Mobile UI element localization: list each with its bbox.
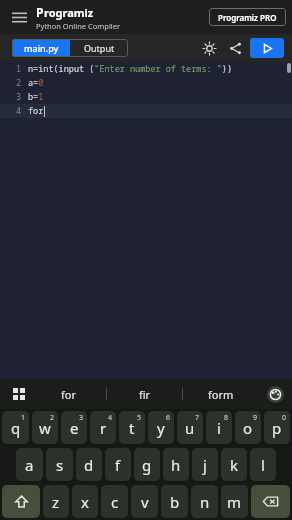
staticText: d [84,455,94,475]
staticText: Output [84,42,115,54]
staticText: p [272,418,282,438]
button[interactable]: Run [250,38,284,58]
staticText: k [230,455,239,475]
staticText: b [170,492,180,512]
staticText: u [185,418,195,438]
staticText: z [52,492,60,512]
staticText: 3 [79,413,84,423]
button[interactable]: w [32,411,58,444]
button[interactable]: h [163,448,189,481]
staticText: v [141,492,149,512]
button[interactable]: v [131,485,158,518]
staticText: 8 [224,413,229,423]
button[interactable]: n [191,485,218,518]
staticText: Python Online Compiler [36,21,121,31]
button[interactable]: form [183,379,258,409]
staticText: s [56,455,64,475]
button[interactable]: c [101,485,128,518]
staticText: 5 [137,413,142,423]
button[interactable]: Themes [264,383,286,405]
button[interactable]: t [119,411,145,444]
button[interactable]: i [206,411,232,444]
staticText: h [171,455,181,475]
button[interactable]: Programiz PRO [209,8,286,26]
staticText: m [227,492,242,512]
staticText: o [243,418,253,438]
button[interactable]: o [235,411,261,444]
button[interactable]: Keyboard options [8,383,30,405]
staticText: c [111,492,119,512]
staticText: rogramiz [44,5,94,20]
staticText: 4 [108,413,113,423]
staticText: 7 [195,413,200,423]
staticText: for [61,387,76,402]
button[interactable]: e [61,411,87,444]
button[interactable]: p [264,411,290,444]
staticText: 4 [16,105,22,117]
staticText: y [157,418,165,438]
button[interactable]: Menu [6,4,32,30]
staticText: 6 [166,413,171,423]
staticText: x [81,492,89,512]
button[interactable]: g [134,448,160,481]
staticText: l [261,455,265,475]
staticText: j [203,455,207,475]
staticText: fir [139,387,151,402]
button[interactable]: k [221,448,247,481]
staticText: i [217,418,221,438]
button[interactable]: fir [107,379,182,409]
button[interactable]: z [43,485,69,518]
staticText: 2 [16,77,22,89]
staticText: t [129,418,135,438]
staticText: w [39,418,51,438]
staticText: 1 [21,413,26,423]
button[interactable]: l [250,448,276,481]
button[interactable]: q [2,411,29,444]
button[interactable]: j [192,448,218,481]
button[interactable]: Backspace [251,485,290,518]
button[interactable]: b [161,485,188,518]
button[interactable]: Theme [198,37,220,59]
button[interactable]: for [30,379,106,409]
staticText: Programiz PRO [218,12,277,23]
staticText: q [11,418,21,438]
staticText: 3 [16,91,22,103]
button[interactable]: a [16,448,43,481]
staticText: n [200,492,210,512]
button[interactable]: Shift [2,485,40,518]
staticText: f [115,455,121,475]
button[interactable]: Output [70,39,128,57]
staticText: main.py [24,42,59,54]
staticText: 9 [253,413,258,423]
button[interactable]: y [148,411,174,444]
staticText: r [100,418,107,438]
staticText: b=1 [28,91,44,103]
button[interactable]: x [72,485,98,518]
staticText: form [208,387,234,402]
staticText: a=0 [28,77,44,89]
staticText: g [142,455,152,475]
staticText: for [28,105,44,117]
staticText: a [25,455,34,475]
button[interactable]: Share [224,37,246,59]
staticText: n=int(input ("Enter number of terms: ")) [28,63,233,75]
button[interactable]: d [76,448,102,481]
button[interactable]: main.py [12,39,70,57]
staticText: 0 [282,413,287,423]
button[interactable]: r [90,411,116,444]
staticText: 2 [50,413,55,423]
button[interactable]: f [105,448,131,481]
staticText: 1 [16,63,22,75]
button[interactable]: u [177,411,203,444]
button[interactable]: s [46,448,73,481]
staticText: P [36,4,44,20]
button[interactable]: m [221,485,248,518]
staticText: e [70,418,79,438]
